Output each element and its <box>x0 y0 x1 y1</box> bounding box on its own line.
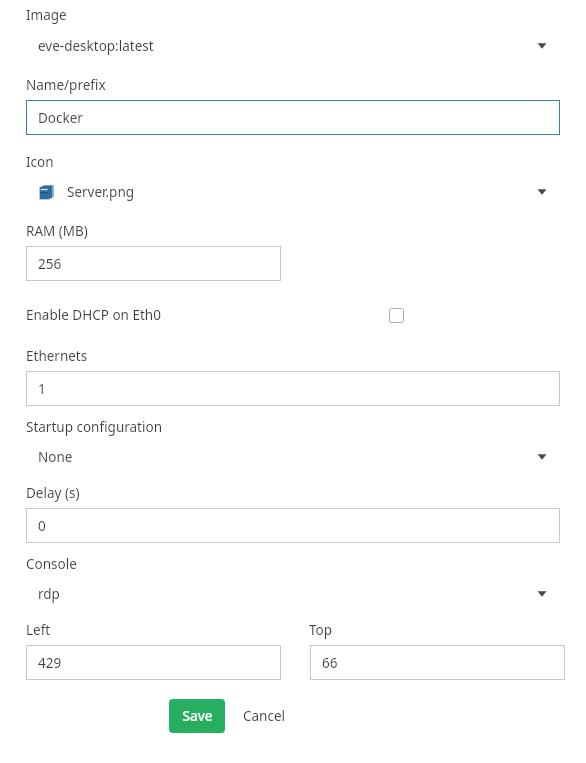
staticText: 0 <box>38 517 46 535</box>
button[interactable]: rdp <box>26 577 560 611</box>
staticText: Enable DHCP on Eth0 <box>26 306 161 324</box>
staticText: Docker <box>38 109 83 127</box>
staticText: 429 <box>38 654 62 672</box>
staticText: None <box>38 448 73 466</box>
other: Open Icon options <box>536 188 548 196</box>
button[interactable]: None <box>26 440 560 474</box>
staticText: Icon <box>26 153 54 171</box>
staticText: Ethernets <box>26 347 88 365</box>
button[interactable]: 256 <box>26 246 281 281</box>
button[interactable]: Server.png <box>26 175 560 209</box>
staticText: 1 <box>38 380 46 398</box>
button[interactable]: eve-desktop:latest <box>26 29 560 63</box>
button[interactable]: 429 <box>26 645 281 680</box>
staticText: Save <box>182 707 213 725</box>
button[interactable]: 1 <box>26 371 560 406</box>
staticText: eve-desktop:latest <box>38 37 154 55</box>
staticText: rdp <box>38 585 60 603</box>
staticText: Top <box>309 621 333 639</box>
staticText: RAM (MB) <box>26 222 88 240</box>
staticText: Cancel <box>243 707 286 725</box>
staticText: 66 <box>322 654 338 672</box>
other: Open Startup configuration options <box>536 453 548 461</box>
button[interactable]: Enable DHCP on Eth0 <box>385 304 407 326</box>
staticText: Name/prefix <box>26 76 106 94</box>
staticText: Left <box>26 621 51 639</box>
staticText: Delay (s) <box>26 484 80 502</box>
staticText: 256 <box>38 255 62 273</box>
button[interactable]: 0 <box>26 508 560 543</box>
staticText: Image <box>26 6 67 24</box>
button[interactable]: Cancel <box>239 699 290 733</box>
staticText: Startup configuration <box>26 418 162 436</box>
button[interactable]: Docker <box>26 100 560 135</box>
button[interactable]: 66 <box>310 645 565 680</box>
button[interactable]: Save <box>169 699 225 733</box>
other: Open Console options <box>536 590 548 598</box>
other: Open Image options <box>536 42 548 50</box>
staticText: Server.png <box>67 183 135 201</box>
staticText: Console <box>26 555 77 573</box>
